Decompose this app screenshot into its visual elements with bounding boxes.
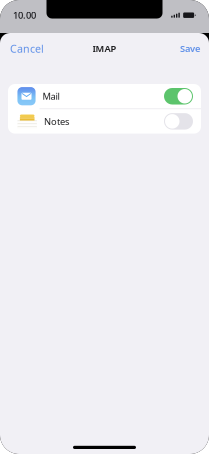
- button[interactable]: Cancel: [10, 41, 44, 56]
- staticText: Notes: [44, 115, 69, 128]
- staticText: IMAP: [92, 42, 116, 55]
- button[interactable]: Mail: [8, 84, 201, 108]
- button[interactable]: Notes: [8, 109, 201, 134]
- staticText: Cancel: [10, 41, 44, 56]
- button[interactable]: Save: [180, 42, 200, 55]
- staticText: Mail: [42, 90, 59, 102]
- staticText: Save: [180, 42, 200, 55]
- staticText: 10.00: [13, 9, 36, 21]
